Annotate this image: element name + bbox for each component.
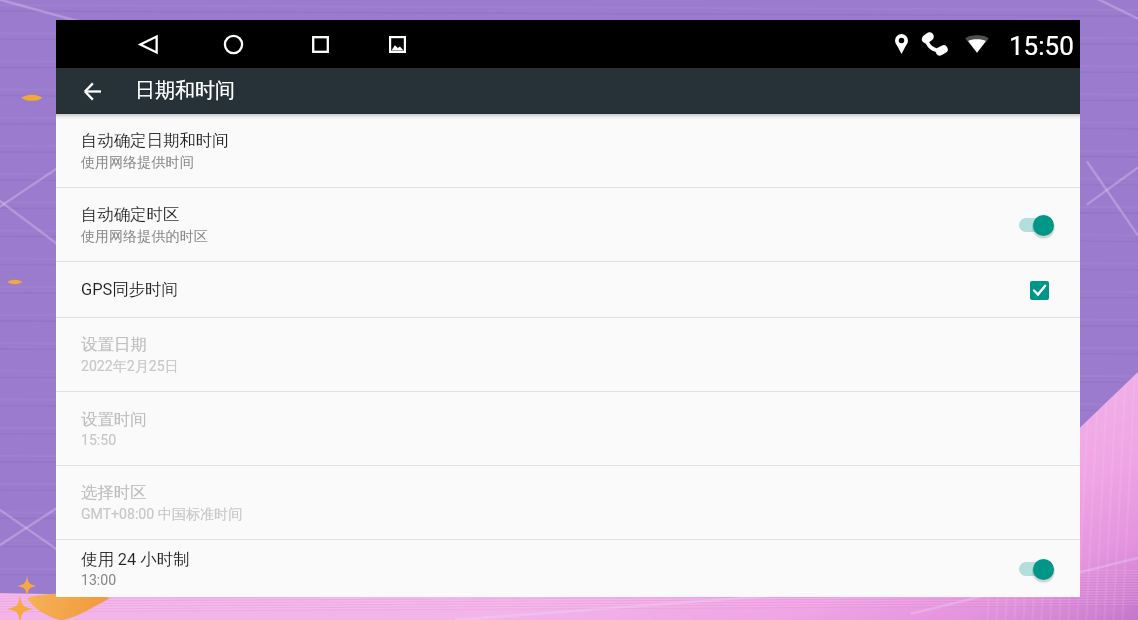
staticText: 15:50 bbox=[1009, 31, 1074, 61]
staticText: 选择时区 bbox=[81, 482, 147, 503]
button[interactable]: Home bbox=[211, 30, 255, 58]
button[interactable]: Toggle switch bbox=[1007, 208, 1054, 242]
button[interactable]: Checkbox bbox=[1024, 275, 1054, 305]
staticText: 设置日期 bbox=[81, 334, 147, 355]
staticText: GMT+08:00 中国标准时间 bbox=[81, 505, 243, 523]
staticText: 自动确定日期和时间 bbox=[81, 130, 229, 151]
staticText: 使用网络提供的时区 bbox=[81, 227, 208, 245]
button[interactable]: 使用 24 小时制 bbox=[56, 540, 1080, 597]
button[interactable]: Back bbox=[126, 30, 170, 58]
staticText: 13:00 bbox=[81, 572, 117, 589]
button[interactable]: 自动确定日期和时间 bbox=[56, 114, 1080, 187]
staticText: 使用 24 小时制 bbox=[81, 549, 190, 570]
button[interactable]: Recents bbox=[298, 30, 342, 58]
button[interactable]: 设置时间 bbox=[56, 392, 1080, 465]
staticText: GPS同步时间 bbox=[81, 279, 178, 300]
staticText: 15:50 bbox=[81, 432, 117, 449]
staticText: 设置时间 bbox=[81, 409, 147, 430]
staticText: 日期和时间 bbox=[135, 78, 235, 103]
button[interactable]: 设置日期 bbox=[56, 318, 1080, 391]
button[interactable]: 选择时区 bbox=[56, 466, 1080, 539]
button[interactable]: Toggle switch bbox=[1007, 552, 1054, 586]
button[interactable]: 自动确定时区 bbox=[56, 188, 1080, 261]
button[interactable]: Screenshot bbox=[375, 30, 419, 58]
button[interactable]: Navigate up bbox=[60, 68, 124, 114]
staticText: 2022年2月25日 bbox=[81, 357, 179, 375]
staticText: 使用网络提供时间 bbox=[81, 153, 194, 171]
button[interactable]: GPS同步时间 bbox=[56, 262, 1080, 317]
staticText: 自动确定时区 bbox=[81, 204, 180, 225]
